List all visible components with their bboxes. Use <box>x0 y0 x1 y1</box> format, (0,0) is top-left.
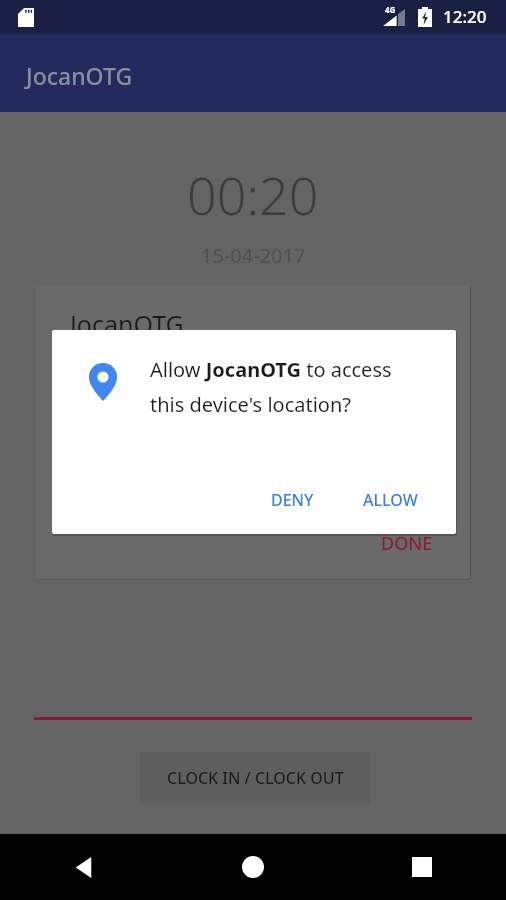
button[interactable]: Home <box>168 834 337 900</box>
staticText: JocanOTG <box>70 307 184 341</box>
staticText: CLOCK IN / CLOCK OUT <box>167 767 344 789</box>
staticText: DONE <box>381 531 433 556</box>
staticText: 12:20 <box>443 5 487 28</box>
staticText: ALLOW <box>363 489 418 511</box>
button[interactable]: DENY <box>259 483 326 517</box>
staticText: 00:20 <box>187 159 319 230</box>
staticText: 4G <box>385 4 396 15</box>
staticText: 15-04-2017 <box>201 242 306 269</box>
button[interactable]: Recent apps <box>337 834 506 900</box>
staticText: DENY <box>271 489 314 511</box>
button[interactable]: ALLOW <box>351 483 430 517</box>
button[interactable]: CLOCK IN / CLOCK OUT <box>140 752 370 803</box>
button[interactable]: Back <box>0 834 168 900</box>
staticText: JocanOTG <box>26 60 133 91</box>
staticText: Allow JocanOTG to access this device's l… <box>150 356 425 418</box>
